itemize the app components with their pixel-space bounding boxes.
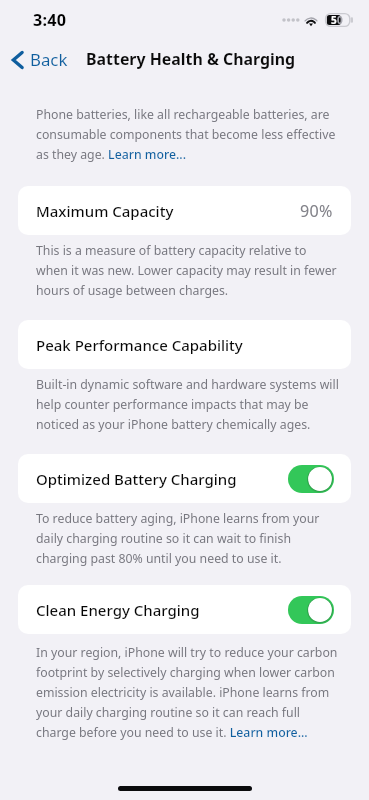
staticText: To reduce battery aging, iPhone learns f… (36, 507, 340, 567)
button[interactable]: Maximum Capacity (18, 186, 351, 235)
button[interactable]: Optimized Battery Charging (288, 465, 334, 493)
staticText: Clean Energy Charging (36, 600, 200, 620)
button[interactable]: Back (0, 41, 76, 78)
staticText: 5 (331, 13, 337, 27)
staticText: 0 (337, 13, 343, 27)
button[interactable]: Peak Performance Capability (18, 320, 351, 369)
staticText: Maximum Capacity (36, 201, 174, 221)
staticText: Built-in dynamic software and hardware s… (36, 373, 340, 433)
staticText: Peak Performance Capability (36, 335, 243, 355)
button[interactable]: Clean Energy Charging (288, 596, 334, 624)
staticText: Phone batteries, like all rechargeable b… (36, 103, 340, 163)
staticText: Back (30, 48, 68, 71)
staticText: This is a measure of battery capacity re… (36, 239, 340, 299)
staticText: Optimized Battery Charging (36, 469, 237, 489)
staticText: Battery Health & Charging (86, 48, 296, 70)
staticText: In your region, iPhone will try to reduc… (36, 641, 340, 741)
staticText: 90% (300, 200, 333, 222)
staticText: 3:40 (33, 9, 67, 31)
